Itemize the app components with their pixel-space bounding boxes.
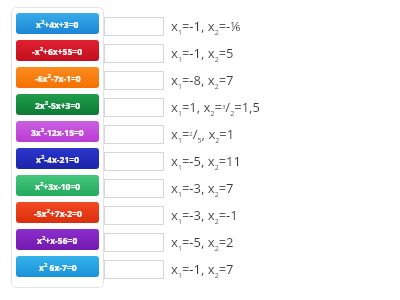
staticText: x2 6x-7=0 bbox=[39, 261, 77, 273]
staticText: x1=-1, x2=-⅙ bbox=[171, 17, 241, 37]
staticText: x1=-5, x2=2 bbox=[171, 233, 234, 253]
button[interactable]: Drop target 9 bbox=[104, 233, 164, 252]
staticText: -6x2-7x-1=0 bbox=[35, 72, 81, 84]
button[interactable]: -x2+6x+55=0 bbox=[16, 40, 99, 61]
staticText: x1=1, x2=3/2=1,5 bbox=[171, 98, 260, 118]
button[interactable]: x2-4x-21=0 bbox=[16, 148, 99, 169]
button[interactable]: x2+4x+3=0 bbox=[16, 13, 99, 34]
button[interactable]: Drop target 5 bbox=[104, 125, 164, 144]
button[interactable]: -5x2+7x-2=0 bbox=[16, 202, 99, 223]
staticText: -x2+6x+55=0 bbox=[32, 45, 83, 57]
button[interactable]: Drop target 1 bbox=[104, 17, 164, 36]
button[interactable]: Drop target 6 bbox=[104, 152, 164, 171]
button[interactable]: 2x2-5x+3=0 bbox=[16, 94, 99, 115]
button[interactable]: Drop target 3 bbox=[104, 71, 164, 90]
staticText: x1=-3, x2=-1 bbox=[171, 206, 238, 226]
staticText: x1=-3, x2=7 bbox=[171, 179, 234, 199]
staticText: -5x2+7x-2=0 bbox=[34, 207, 82, 219]
button[interactable]: -6x2-7x-1=0 bbox=[16, 67, 99, 88]
button[interactable]: Drop target 10 bbox=[104, 260, 164, 279]
staticText: x2-4x-21=0 bbox=[36, 153, 80, 165]
button[interactable]: 3x2-12x-15=0 bbox=[16, 121, 99, 142]
button[interactable]: x2 6x-7=0 bbox=[16, 256, 99, 277]
button[interactable]: Drop target 7 bbox=[104, 179, 164, 198]
staticText: x1=2/5, x2=1 bbox=[171, 125, 235, 145]
staticText: 2x2-5x+3=0 bbox=[35, 99, 81, 111]
staticText: x2+4x+3=0 bbox=[36, 18, 79, 30]
staticText: x1=-5, x2=11 bbox=[171, 152, 241, 172]
staticText: x1=-1, x2=5 bbox=[171, 44, 234, 64]
button[interactable]: x2+3x-10=0 bbox=[16, 175, 99, 196]
button[interactable]: Drop target 2 bbox=[104, 44, 164, 63]
button[interactable]: Drop target 4 bbox=[104, 98, 164, 117]
button[interactable]: Drop target 8 bbox=[104, 206, 164, 225]
staticText: x1=-8, x2=7 bbox=[171, 71, 234, 91]
staticText: x2+3x-10=0 bbox=[35, 180, 81, 192]
button[interactable]: x2+x-56=0 bbox=[16, 229, 99, 250]
staticText: 3x2-12x-15=0 bbox=[31, 126, 84, 138]
staticText: x1=-1, x2=7 bbox=[171, 260, 234, 280]
staticText: x2+x-56=0 bbox=[37, 234, 78, 246]
